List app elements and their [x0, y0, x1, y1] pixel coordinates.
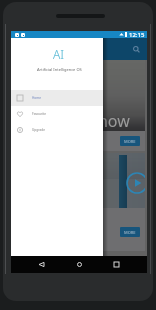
staticText: 12:15 — [129, 31, 145, 38]
button[interactable]: Play video — [13, 153, 145, 251]
button[interactable]: Home — [11, 90, 103, 106]
staticText: MORE — [124, 230, 136, 235]
button[interactable]: Favourite — [11, 106, 103, 122]
staticText: Upgrade — [32, 128, 46, 132]
staticText: AI changes your business in all ways and… — [13, 211, 113, 218]
button[interactable]: MORE — [120, 136, 140, 146]
button[interactable]: Recents — [110, 258, 123, 271]
staticText: Home — [32, 96, 42, 100]
staticText: MORE — [124, 139, 136, 144]
button[interactable]: Play video — [126, 172, 145, 194]
staticText: AI — [53, 46, 65, 62]
button[interactable]: Search — [129, 42, 143, 56]
button[interactable]: MORE — [120, 227, 140, 237]
staticText: Artificial Intelligence is here now — [13, 110, 136, 131]
staticText: Favourite — [32, 112, 47, 116]
staticText: Artificial Intelligence OS — [37, 67, 82, 72]
button[interactable]: Upgrade — [11, 122, 103, 138]
button[interactable]: Artificial Intelligence is here now — [13, 60, 145, 151]
button[interactable]: Home — [73, 258, 86, 271]
button[interactable]: Back — [35, 258, 48, 271]
